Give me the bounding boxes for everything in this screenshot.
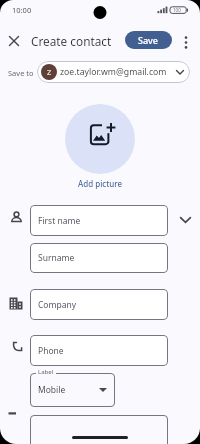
staticText: Add picture xyxy=(78,178,123,189)
staticText: Create contact xyxy=(31,33,112,49)
staticText: Save to xyxy=(8,68,34,78)
button[interactable]: First name xyxy=(30,205,168,236)
button[interactable] xyxy=(176,211,194,228)
button[interactable]: Company xyxy=(30,289,168,320)
button[interactable]: Surname xyxy=(30,243,168,273)
button[interactable] xyxy=(3,30,25,52)
button[interactable] xyxy=(30,415,168,444)
button[interactable]: Phone xyxy=(30,335,168,366)
staticText: First name xyxy=(38,215,81,227)
button[interactable]: Z xyxy=(37,61,190,83)
button[interactable]: Mobile xyxy=(30,373,115,407)
staticText: Phone xyxy=(38,345,64,357)
staticText: Mobile xyxy=(38,384,66,396)
staticText: 10:00 xyxy=(12,5,32,15)
staticText: 100 xyxy=(173,7,181,13)
button[interactable] xyxy=(178,33,194,51)
staticText: zoe.taylor.wm@gmail.com xyxy=(60,66,167,78)
button[interactable]: Save xyxy=(125,31,172,49)
staticText: Z xyxy=(47,67,52,77)
staticText: Save xyxy=(138,34,159,46)
staticText: Company xyxy=(38,299,77,311)
button[interactable] xyxy=(65,104,135,174)
staticText: Label xyxy=(38,368,54,376)
staticText: Surname xyxy=(38,252,75,264)
